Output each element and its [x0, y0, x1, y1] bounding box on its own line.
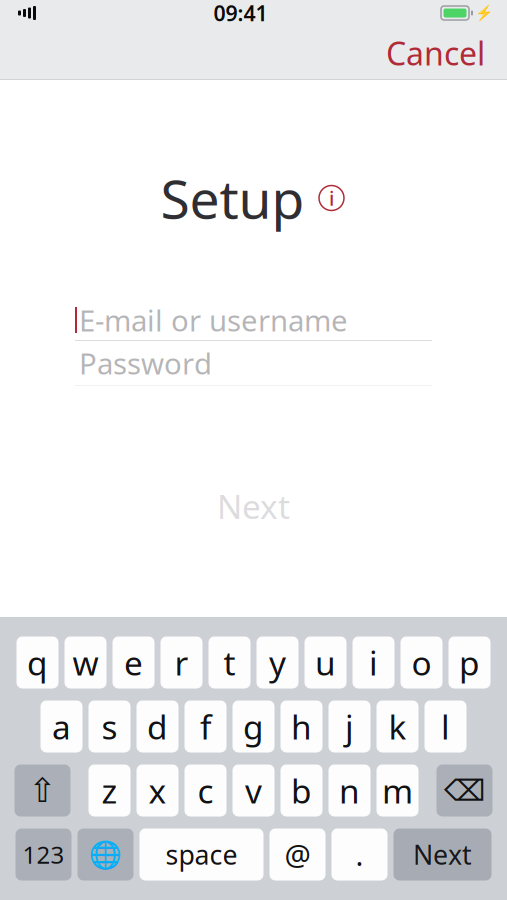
button[interactable]: @	[269, 828, 325, 880]
staticText: n	[339, 768, 360, 813]
button[interactable]: k	[376, 700, 418, 752]
staticText: Cancel	[386, 32, 485, 74]
button[interactable]: t	[208, 636, 250, 688]
button[interactable]: c	[184, 764, 226, 816]
staticText: ⇧	[28, 772, 56, 809]
button[interactable]: Next	[191, 476, 316, 536]
button[interactable]: g	[232, 700, 274, 752]
staticText: q	[27, 640, 48, 685]
staticText: w	[72, 640, 98, 685]
button[interactable]: Shift	[14, 764, 70, 816]
staticText: o	[411, 640, 431, 685]
button[interactable]: e	[112, 636, 154, 688]
button[interactable]: space	[139, 828, 263, 880]
staticText: j	[345, 704, 354, 749]
staticText: h	[291, 704, 312, 749]
staticText: g	[243, 704, 264, 749]
button[interactable]: p	[448, 636, 490, 688]
staticText: E-mail or username	[79, 300, 348, 339]
staticText: l	[441, 704, 450, 749]
staticText: @	[284, 835, 310, 874]
staticText: v	[245, 768, 262, 813]
button[interactable]: Next	[393, 828, 491, 880]
button[interactable]: r	[160, 636, 202, 688]
staticText: .	[355, 835, 363, 874]
staticText: 🌐	[89, 839, 122, 870]
staticText: space	[165, 837, 237, 872]
button[interactable]: z	[88, 764, 130, 816]
button[interactable]: x	[136, 764, 178, 816]
button[interactable]: i	[352, 636, 394, 688]
button[interactable]: b	[280, 764, 322, 816]
staticText: t	[223, 640, 235, 685]
button[interactable]: m	[376, 764, 418, 816]
button[interactable]: f	[184, 700, 226, 752]
button[interactable]: u	[304, 636, 346, 688]
staticText: u	[315, 640, 336, 685]
button[interactable]: h	[280, 700, 322, 752]
button[interactable]: l	[424, 700, 466, 752]
staticText: Setup	[160, 163, 304, 233]
button[interactable]: Delete	[436, 764, 492, 816]
staticText: p	[459, 640, 480, 685]
button[interactable]: d	[136, 700, 178, 752]
staticText: b	[291, 768, 312, 813]
button[interactable]: E-mail or username	[0, 300, 507, 341]
button[interactable]: n	[328, 764, 370, 816]
button[interactable]: s	[88, 700, 130, 752]
staticText: m	[382, 768, 413, 813]
button[interactable]: About setup	[316, 183, 346, 213]
button[interactable]: v	[232, 764, 274, 816]
button[interactable]: j	[328, 700, 370, 752]
staticText: Password	[79, 343, 212, 382]
staticText: 09:41	[213, 0, 267, 27]
staticText: a	[52, 704, 71, 749]
staticText: ⌫	[444, 774, 485, 807]
staticText: x	[148, 768, 166, 813]
staticText: Next	[413, 837, 472, 872]
button[interactable]: q	[16, 636, 58, 688]
button[interactable]: a	[40, 700, 82, 752]
staticText: Next	[217, 484, 290, 528]
button[interactable]: o	[400, 636, 442, 688]
button[interactable]: Password	[0, 341, 507, 386]
staticText: i	[329, 185, 334, 211]
staticText: e	[124, 640, 143, 685]
staticText: i	[369, 640, 378, 685]
button[interactable]: y	[256, 636, 298, 688]
button[interactable]: Next keyboard	[77, 828, 133, 880]
staticText: 123	[22, 839, 64, 870]
staticText: c	[197, 768, 213, 813]
staticText: s	[101, 704, 117, 749]
button[interactable]: 123	[15, 828, 71, 880]
staticText: k	[388, 704, 406, 749]
staticText: y	[269, 640, 286, 685]
staticText: ⚡	[475, 5, 493, 21]
staticText: d	[147, 704, 168, 749]
button[interactable]: Cancel	[374, 24, 497, 82]
staticText: f	[200, 704, 211, 749]
staticText: z	[101, 768, 117, 813]
staticText: r	[174, 640, 188, 685]
button[interactable]: w	[64, 636, 106, 688]
button[interactable]: .	[331, 828, 387, 880]
